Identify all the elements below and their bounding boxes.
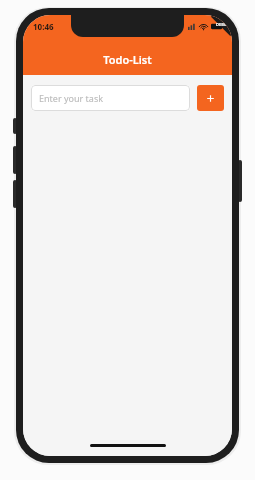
staticText: DEBUG — [216, 22, 230, 27]
staticText: Enter your task — [39, 92, 104, 104]
button[interactable]: Add task — [197, 85, 224, 111]
button[interactable]: Enter your task — [31, 85, 190, 111]
staticText: Todo-List — [103, 52, 152, 67]
staticText: 10:46 — [33, 21, 54, 32]
